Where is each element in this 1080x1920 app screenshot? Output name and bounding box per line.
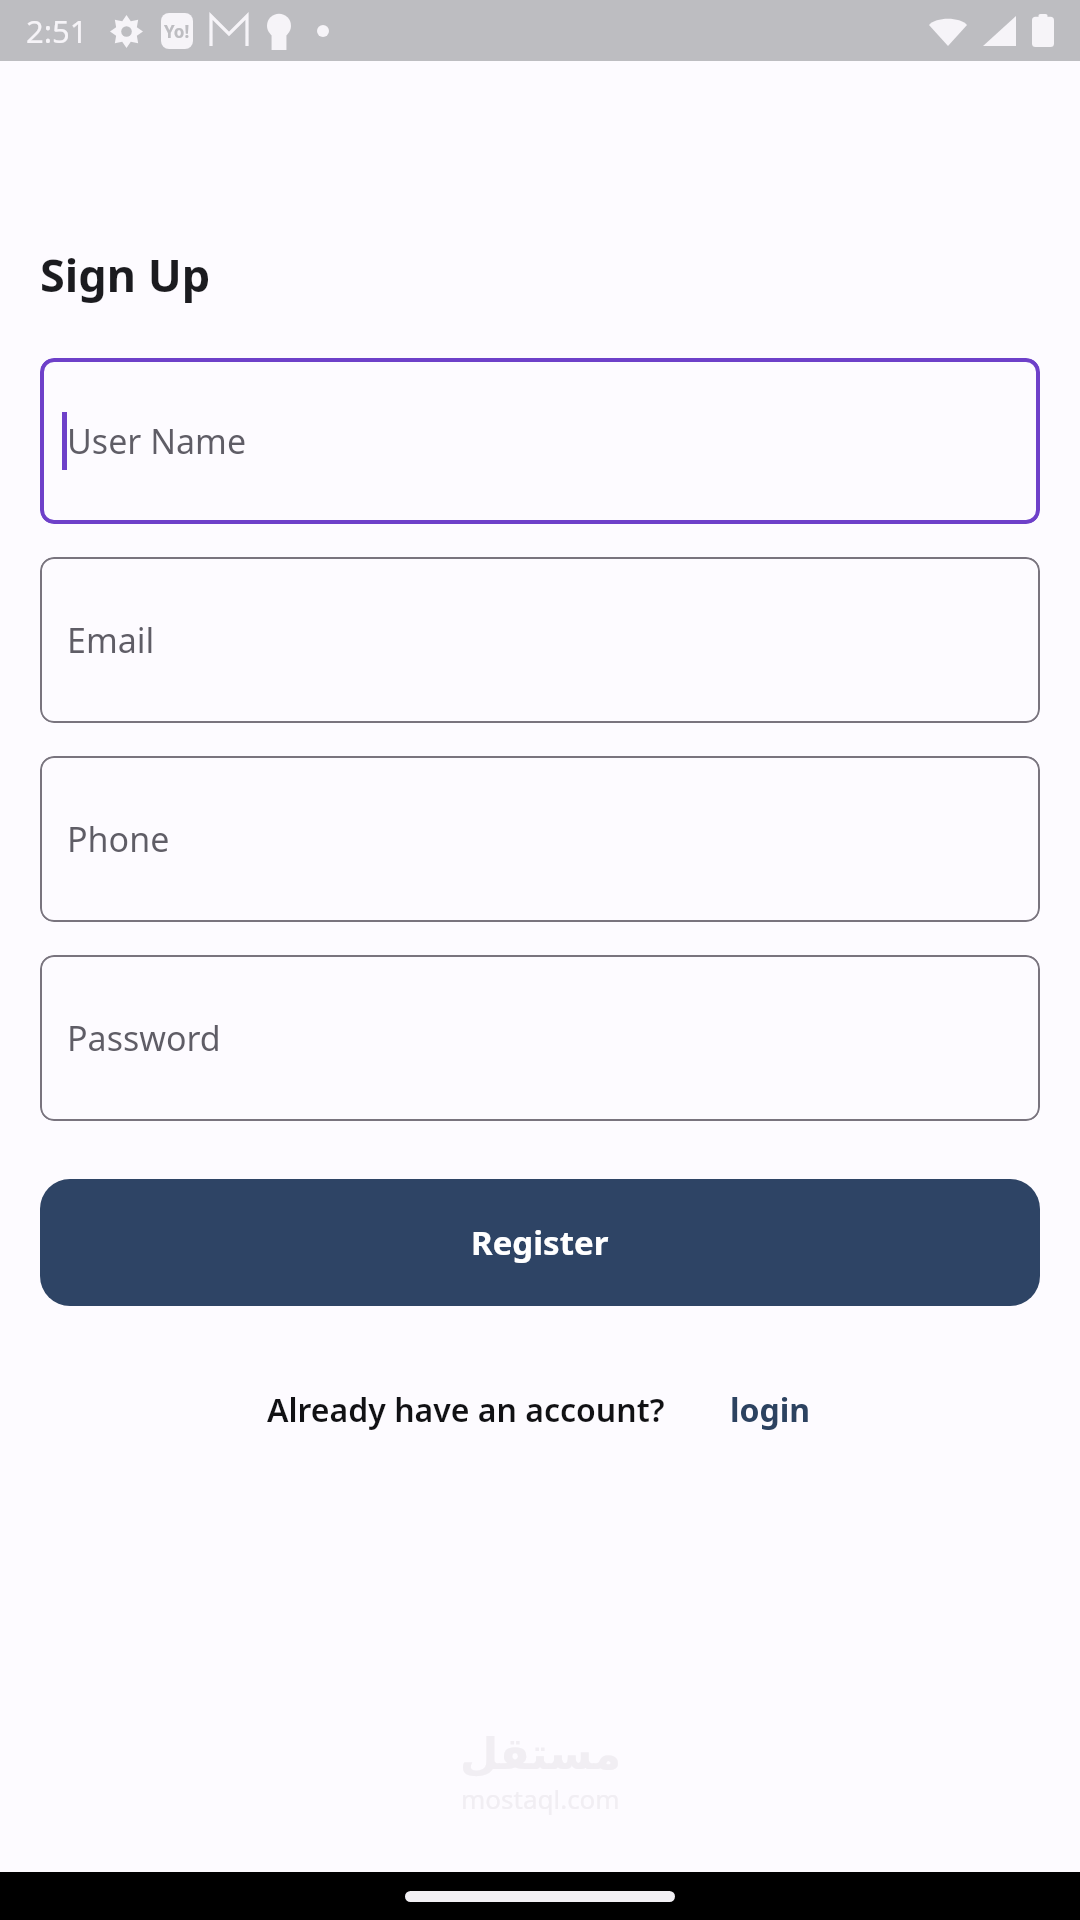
staticText: 2:51 — [26, 10, 88, 52]
staticText: مستقل — [460, 1728, 621, 1779]
button[interactable]: Register — [40, 1179, 1040, 1306]
button[interactable]: Password — [40, 955, 1040, 1121]
staticText: Yo! — [164, 20, 190, 43]
button[interactable]: User Name — [40, 358, 1040, 524]
staticText: Email — [67, 617, 155, 663]
staticText: login — [730, 1388, 811, 1432]
button[interactable]: login — [728, 1384, 813, 1436]
staticText: User Name — [67, 418, 247, 464]
button[interactable]: Email — [40, 557, 1040, 723]
staticText: Register — [471, 1220, 609, 1265]
button[interactable]: Phone — [40, 756, 1040, 922]
staticText: Sign Up — [40, 244, 211, 305]
staticText: Password — [67, 1015, 221, 1061]
staticText: Already have an account? — [267, 1388, 665, 1432]
staticText: mostaql.com — [461, 1781, 620, 1816]
staticText: Phone — [67, 816, 170, 862]
